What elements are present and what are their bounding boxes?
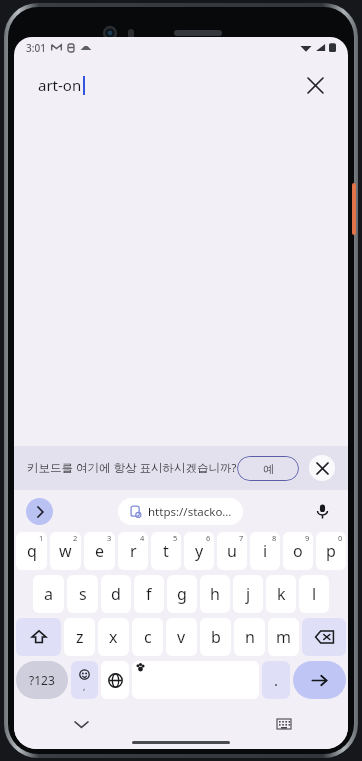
button[interactable]: e	[84, 532, 115, 570]
staticText: p	[326, 540, 336, 562]
staticText: t	[163, 540, 169, 562]
staticText: j	[246, 583, 251, 605]
button[interactable]: s	[67, 575, 98, 613]
button[interactable]: Hide keyboard	[69, 712, 93, 736]
button[interactable]: Shift	[16, 618, 61, 656]
button[interactable]: Change language	[101, 661, 129, 699]
button[interactable]: p	[316, 532, 346, 570]
staticText: h	[210, 583, 220, 605]
button[interactable]: x	[98, 618, 129, 656]
button[interactable]: u	[217, 532, 247, 570]
button[interactable]: a	[33, 575, 64, 613]
button[interactable]: g	[167, 575, 197, 613]
button[interactable]: Dismiss	[309, 455, 335, 481]
staticText: g	[177, 583, 187, 605]
button[interactable]: Space	[132, 661, 259, 699]
staticText: m	[276, 626, 291, 648]
button[interactable]: z	[64, 618, 95, 656]
button[interactable]: Clear text	[300, 70, 330, 100]
button[interactable]: 예	[237, 456, 299, 481]
staticText: d	[111, 583, 121, 605]
staticText: 7	[239, 533, 244, 543]
button[interactable]: q	[16, 532, 47, 570]
staticText: k	[277, 583, 286, 605]
staticText: 예	[263, 462, 274, 476]
button[interactable]: i	[250, 532, 280, 570]
staticText: 6	[206, 533, 211, 543]
staticText: ,	[83, 680, 86, 692]
staticText: i	[263, 540, 268, 562]
button[interactable]: k	[266, 575, 296, 613]
button[interactable]: f	[134, 575, 164, 613]
staticText: a	[44, 583, 53, 605]
staticText: 1	[39, 533, 44, 543]
button[interactable]: m	[268, 618, 299, 656]
staticText: 8	[272, 533, 277, 543]
button[interactable]: j	[233, 575, 263, 613]
staticText: l	[312, 583, 317, 605]
staticText: v	[177, 626, 186, 648]
staticText: r	[130, 540, 137, 562]
staticText: art-on	[38, 75, 82, 95]
staticText: u	[227, 540, 237, 562]
button[interactable]: Backspace	[302, 618, 346, 656]
staticText: 키보드를 여기에 항상 표시하시겠습니까?	[27, 460, 237, 476]
button[interactable]: d	[101, 575, 131, 613]
button[interactable]: Voice input	[309, 498, 336, 525]
button[interactable]: b	[200, 618, 231, 656]
staticText: f	[146, 583, 152, 605]
button[interactable]: t	[151, 532, 181, 570]
staticText: https://stacko…	[148, 504, 232, 520]
staticText: 9	[305, 533, 310, 543]
button[interactable]: ?123	[16, 661, 68, 699]
staticText: 2	[73, 533, 78, 543]
staticText: 5	[173, 533, 178, 543]
button[interactable]: o	[283, 532, 313, 570]
button[interactable]: https://stacko…	[129, 498, 232, 525]
staticText: q	[27, 540, 37, 562]
staticText: .	[274, 670, 279, 690]
button[interactable]: Expand suggestions	[26, 498, 53, 525]
staticText: e	[95, 540, 105, 562]
button[interactable]: Enter	[293, 661, 346, 699]
staticText: n	[245, 626, 255, 648]
button[interactable]: v	[166, 618, 197, 656]
button[interactable]: Emoji	[71, 661, 98, 699]
button[interactable]: .	[262, 661, 290, 699]
staticText: y	[195, 540, 204, 562]
staticText: 0	[338, 533, 343, 543]
button[interactable]: h	[200, 575, 230, 613]
staticText: x	[109, 626, 118, 648]
staticText: s	[79, 583, 87, 605]
button[interactable]: c	[132, 618, 163, 656]
button[interactable]: y	[184, 532, 214, 570]
staticText: b	[211, 626, 221, 648]
staticText: c	[144, 626, 152, 648]
staticText: w	[59, 540, 72, 562]
button[interactable]: Switch keyboard	[272, 712, 296, 736]
staticText: ?123	[29, 672, 55, 688]
button[interactable]: r	[118, 532, 148, 570]
button[interactable]: n	[234, 618, 265, 656]
staticText: z	[76, 626, 84, 648]
button[interactable]: l	[299, 575, 329, 613]
staticText: 3	[107, 533, 112, 543]
staticText: 3:01	[26, 41, 46, 55]
staticText: 4	[140, 533, 145, 543]
staticText: o	[293, 540, 303, 562]
button[interactable]: w	[50, 532, 81, 570]
